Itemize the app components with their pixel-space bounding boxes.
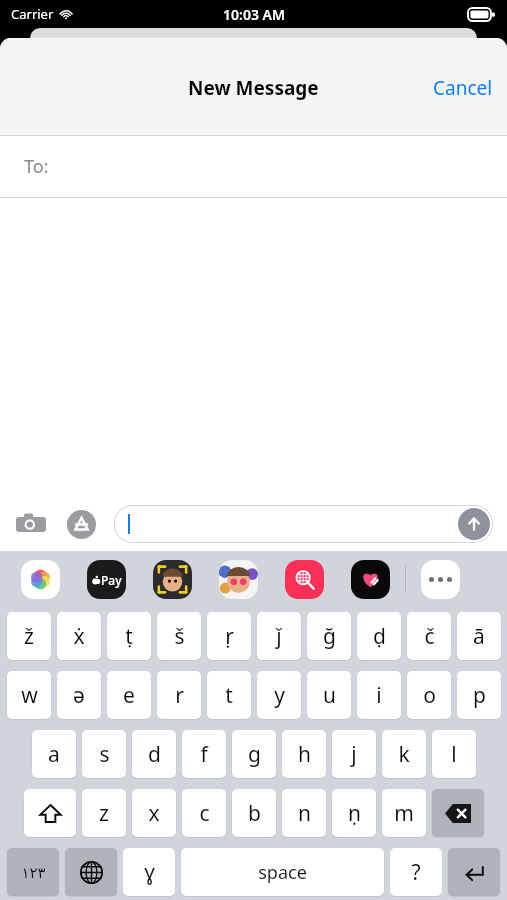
button[interactable]: Images (285, 560, 324, 599)
button[interactable]: l (432, 730, 476, 778)
button[interactable]: Apple Pay (87, 560, 126, 599)
staticText: space (258, 860, 307, 885)
staticText: ẋ (73, 622, 85, 651)
button[interactable]: d (132, 730, 176, 778)
staticText: To: (24, 154, 49, 179)
other: Backspace (445, 804, 471, 823)
button[interactable]: Digital Touch (351, 560, 390, 599)
button[interactable]: p (457, 671, 501, 719)
button[interactable]: ğ (307, 612, 351, 660)
button[interactable]: Cancel (419, 65, 507, 111)
button[interactable]: h (282, 730, 326, 778)
button[interactable]: č (407, 612, 451, 660)
button[interactable]: j (332, 730, 376, 778)
button[interactable]: n (282, 789, 326, 837)
button[interactable]: g (232, 730, 276, 778)
button[interactable]: f (182, 730, 226, 778)
other: Return (463, 861, 486, 884)
staticText: n (298, 799, 311, 828)
staticText: t (225, 681, 233, 710)
staticText: i (376, 681, 382, 710)
button[interactable]: ž (7, 612, 51, 660)
button[interactable]: ə (57, 671, 101, 719)
button[interactable]: ḍ (357, 612, 401, 660)
staticText: p (473, 681, 486, 710)
staticText: s (99, 740, 110, 769)
button[interactable]: ? (390, 848, 442, 896)
button[interactable]: x (132, 789, 176, 837)
other: Switch keyboard (80, 861, 103, 884)
staticText: l (451, 740, 457, 769)
staticText: š (174, 622, 185, 651)
staticText: x (148, 799, 160, 828)
button[interactable]: App Store (64, 507, 98, 541)
button[interactable]: y (257, 671, 301, 719)
button[interactable]: ṇ (332, 789, 376, 837)
staticText: z (99, 799, 109, 828)
staticText: f (200, 740, 208, 769)
button[interactable]: r (157, 671, 201, 719)
button[interactable]: o (407, 671, 451, 719)
button[interactable]: c (182, 789, 226, 837)
button[interactable]: Send (458, 508, 490, 540)
button[interactable]: ā (457, 612, 501, 660)
button[interactable]: Return (448, 848, 500, 896)
button[interactable]: k (382, 730, 426, 778)
button[interactable]: w (7, 671, 51, 719)
staticText: o (423, 681, 436, 710)
button[interactable]: u (307, 671, 351, 719)
staticText: e (123, 681, 135, 710)
button[interactable]: Switch keyboard (65, 848, 117, 896)
button[interactable]: space (181, 848, 384, 896)
staticText: m (394, 799, 414, 828)
staticText: a (48, 740, 60, 769)
button[interactable]: ṛ (207, 612, 251, 660)
button[interactable]: Photos (21, 560, 60, 599)
button[interactable]: m (382, 789, 426, 837)
staticText: New Message (188, 75, 319, 101)
button[interactable]: Shift (24, 789, 76, 837)
button[interactable]: Memoji stickers (219, 560, 258, 599)
staticText: ə (73, 681, 85, 710)
button[interactable]: š (157, 612, 201, 660)
staticText: ṇ (348, 799, 361, 828)
staticText: Carrier (11, 5, 54, 23)
button[interactable]: z (82, 789, 126, 837)
button[interactable]: ɣ (123, 848, 175, 896)
staticText: w (21, 681, 38, 710)
button[interactable]: a (32, 730, 76, 778)
button[interactable]: To: (0, 136, 507, 197)
staticText: ā (473, 622, 485, 651)
staticText: y (274, 681, 285, 710)
staticText: b (248, 799, 261, 828)
staticText: Pay (101, 572, 122, 588)
staticText: ḍ (373, 622, 386, 651)
button[interactable]: ṭ (107, 612, 151, 660)
other: Shift (39, 802, 62, 825)
button[interactable]: Memoji (153, 560, 192, 599)
staticText: d (148, 740, 161, 769)
button[interactable]: ǰ (257, 612, 301, 660)
staticText: k (398, 740, 410, 769)
button[interactable]: ẋ (57, 612, 101, 660)
staticText: h (298, 740, 311, 769)
staticText: 10:03 AM (223, 5, 285, 24)
button[interactable]: i (357, 671, 401, 719)
staticText: ṛ (225, 622, 234, 651)
button[interactable]: Backspace (432, 789, 484, 837)
staticText: ğ (323, 622, 336, 651)
button[interactable]: Send (114, 505, 493, 543)
staticText: ṭ (125, 622, 133, 651)
button[interactable]: e (107, 671, 151, 719)
button[interactable]: t (207, 671, 251, 719)
button[interactable]: b (232, 789, 276, 837)
button[interactable]: More apps (421, 560, 460, 599)
staticText: ? (411, 858, 421, 887)
button[interactable]: s (82, 730, 126, 778)
staticText: c (199, 799, 210, 828)
button[interactable]: ١٢٣ (7, 848, 59, 896)
staticText: Cancel (433, 75, 493, 101)
staticText: ž (24, 622, 34, 651)
button[interactable]: Camera (14, 507, 48, 541)
staticText: r (175, 681, 184, 710)
